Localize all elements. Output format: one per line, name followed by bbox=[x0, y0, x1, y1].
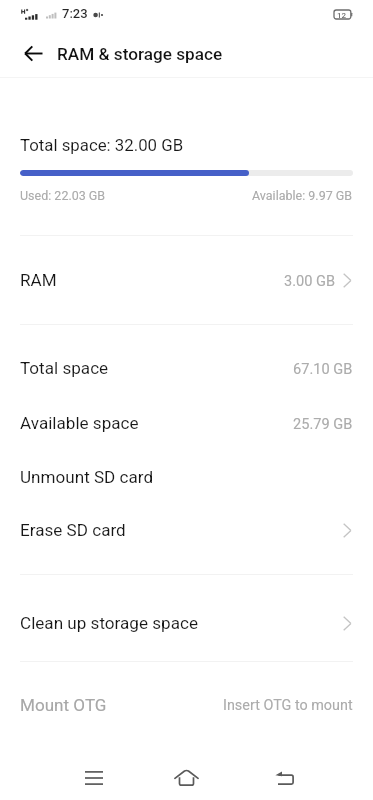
staticText: Total space: 32.00 GB bbox=[20, 135, 184, 155]
staticText: Clean up storage space bbox=[20, 613, 198, 633]
staticText: Available: 9.97 GB bbox=[252, 188, 353, 203]
button[interactable]: Erase SD card bbox=[0, 503, 373, 557]
staticText: 12 bbox=[337, 11, 347, 20]
button[interactable]: Total space bbox=[0, 341, 373, 395]
staticText: RAM & storage space bbox=[57, 44, 223, 64]
button[interactable]: Unmount SD card bbox=[0, 450, 373, 504]
staticText: 67.10 GB bbox=[293, 360, 353, 377]
button[interactable]: Home bbox=[163, 756, 210, 800]
staticText: Unmount SD card bbox=[20, 467, 154, 487]
staticText: Used: 22.03 GB bbox=[20, 188, 106, 203]
staticText: RAM bbox=[20, 270, 57, 290]
button[interactable]: Available space bbox=[0, 396, 373, 450]
button[interactable]: Back bbox=[261, 756, 308, 800]
staticText: 25.79 GB bbox=[293, 415, 353, 432]
staticText: Available space bbox=[20, 413, 139, 433]
staticText: Total space bbox=[20, 358, 109, 378]
staticText: 7:23 bbox=[62, 6, 88, 21]
button[interactable]: Clean up storage space bbox=[0, 580, 373, 666]
staticText: 3.00 GB bbox=[284, 272, 336, 289]
button[interactable]: RAM bbox=[0, 236, 373, 324]
button[interactable]: Back bbox=[9, 30, 57, 77]
staticText: Insert OTG to mount bbox=[223, 697, 353, 714]
button[interactable]: Recent apps bbox=[70, 756, 117, 800]
staticText: Mount OTG bbox=[20, 695, 107, 715]
button[interactable]: Mount OTG bbox=[0, 663, 373, 747]
staticText: Erase SD card bbox=[20, 520, 126, 540]
